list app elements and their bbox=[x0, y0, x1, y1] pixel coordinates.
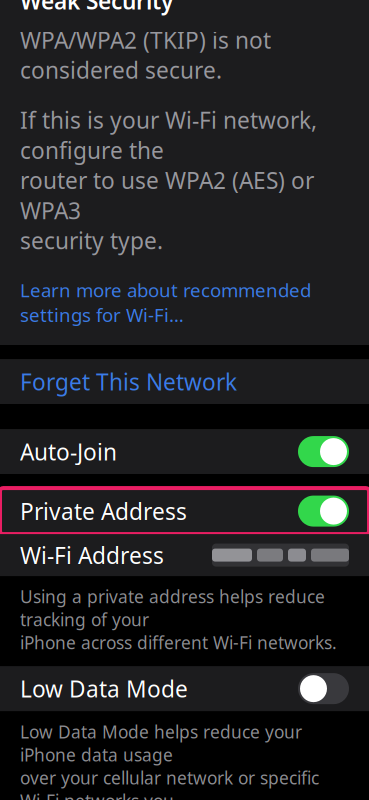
button[interactable]: Forget This Network bbox=[0, 359, 369, 404]
staticText: Low Data Mode bbox=[20, 674, 188, 704]
button[interactable]: Auto-Join bbox=[0, 429, 369, 474]
staticText: If this is your Wi-Fi network, configure… bbox=[20, 105, 317, 255]
staticText: Using a private address helps reduce tra… bbox=[20, 585, 337, 654]
staticText: WPA/WPA2 (TKIP) is not considered secure… bbox=[20, 25, 271, 85]
staticText: Weak Security bbox=[20, 0, 173, 16]
button[interactable]: Wi-Fi Address bbox=[0, 534, 369, 576]
staticText: Private Address bbox=[20, 496, 187, 526]
button[interactable]: Private Address bbox=[0, 488, 369, 534]
staticText: Wi-Fi Address bbox=[20, 540, 164, 570]
staticText: Low Data Mode helps reduce your iPhone d… bbox=[20, 720, 345, 800]
button[interactable]: Low Data Mode bbox=[0, 666, 369, 711]
staticText: Auto-Join bbox=[20, 436, 117, 467]
button[interactable]: Learn more about recommended settings fo… bbox=[20, 255, 349, 345]
staticText: Learn more about recommended settings fo… bbox=[20, 277, 311, 327]
staticText: Forget This Network bbox=[20, 366, 237, 397]
